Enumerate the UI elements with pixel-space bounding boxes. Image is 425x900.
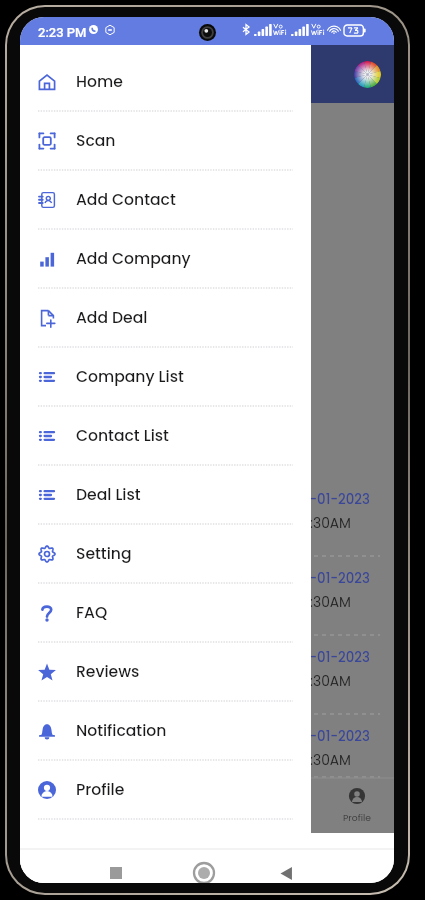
staticText: 12-01-2023 bbox=[297, 727, 370, 746]
staticText: Home bbox=[76, 71, 123, 93]
staticText: 10:30AM bbox=[297, 593, 351, 612]
staticText: Home bbox=[43, 811, 71, 824]
staticText: Add Company bbox=[76, 248, 191, 270]
button[interactable]: Add Company bbox=[20, 230, 311, 288]
button[interactable]: 12-01-2023 bbox=[20, 715, 394, 778]
button[interactable]: Add Contact bbox=[20, 171, 311, 229]
staticText: 12-01-2023 bbox=[297, 648, 370, 667]
staticText: Company bbox=[109, 811, 155, 824]
button[interactable]: Contact List bbox=[20, 407, 311, 465]
button[interactable]: Profile bbox=[20, 761, 311, 819]
button[interactable]: Deal List bbox=[20, 466, 311, 524]
button[interactable]: Profile avatar bbox=[354, 61, 381, 88]
button[interactable] bbox=[39, 319, 142, 359]
button[interactable]: Add Deal bbox=[20, 289, 311, 347]
staticText: 10:30AM bbox=[297, 751, 351, 770]
button[interactable]: Recent apps bbox=[105, 862, 127, 883]
button[interactable]: Notification bbox=[20, 702, 311, 760]
button[interactable]: Back bbox=[274, 861, 298, 883]
button[interactable]: Company bbox=[94, 778, 169, 833]
button[interactable]: Setting bbox=[20, 525, 311, 583]
staticText: Reviews bbox=[76, 661, 140, 683]
staticText: Profile bbox=[343, 811, 371, 824]
staticText: Deal bbox=[271, 811, 292, 824]
button[interactable]: Home bbox=[20, 53, 311, 111]
button[interactable]: Home bbox=[191, 860, 217, 883]
staticText: 12-01-2023 bbox=[297, 569, 370, 588]
button[interactable]: 12-01-2023 bbox=[20, 478, 394, 557]
staticText: Notification bbox=[76, 720, 167, 742]
staticText: Add Deal bbox=[76, 307, 148, 329]
button[interactable]: 12-01-2023 bbox=[20, 557, 394, 636]
staticText: Company List bbox=[76, 366, 184, 388]
button[interactable]: Company List bbox=[20, 348, 311, 406]
button[interactable]: Home bbox=[20, 778, 94, 833]
staticText: Scan bbox=[76, 130, 116, 152]
staticText: 12-01-2023 bbox=[297, 490, 370, 509]
staticText: 10:30AM bbox=[297, 514, 351, 533]
button[interactable]: 12-01-2023 bbox=[20, 636, 394, 715]
button[interactable]: Deal bbox=[244, 778, 319, 833]
staticText: 10:30AM bbox=[297, 672, 351, 691]
staticText: Profile bbox=[76, 779, 125, 801]
staticText: Add Contact bbox=[76, 189, 176, 211]
button[interactable]: FAQ bbox=[20, 584, 311, 642]
staticText: 2:23 PM bbox=[38, 25, 87, 40]
staticText: Add bbox=[197, 811, 216, 824]
staticText: FAQ bbox=[76, 602, 108, 624]
staticText: Contact List bbox=[76, 425, 169, 447]
staticText: Setting bbox=[76, 543, 132, 565]
button[interactable]: Reviews bbox=[20, 643, 311, 701]
button[interactable]: Profile bbox=[319, 778, 394, 833]
button[interactable]: Scan bbox=[20, 112, 311, 170]
staticText: Deal List bbox=[76, 484, 141, 506]
